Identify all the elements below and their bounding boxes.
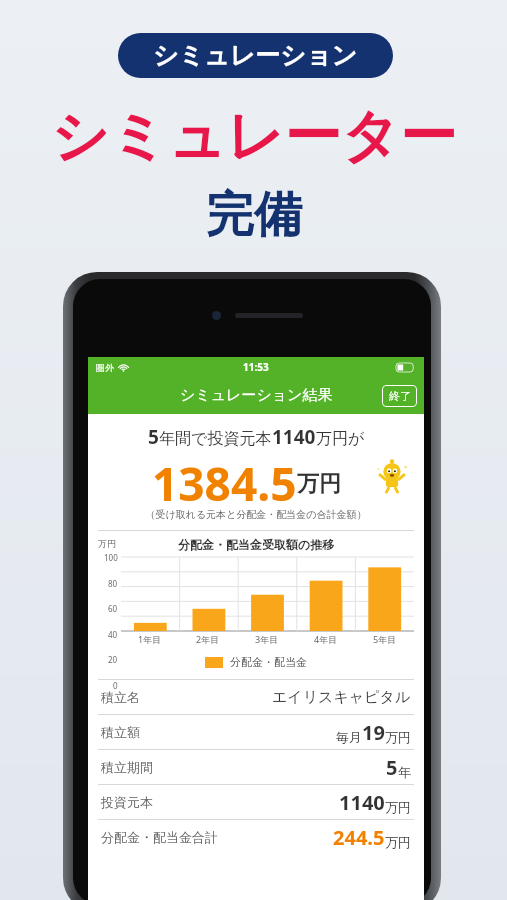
staticText: エイリスキャピタル: [272, 688, 411, 707]
staticText: 投資元本: [101, 794, 153, 810]
staticText: 積立額: [101, 724, 140, 740]
staticText: 1140: [339, 789, 385, 816]
staticText: シミュレーション: [153, 40, 358, 71]
staticText: 毎月: [336, 729, 362, 745]
staticText: （受け取れる元本と分配金・配当金の合計金額）: [145, 508, 367, 521]
staticText: 分配金・配当金受取額の推移: [178, 537, 335, 552]
staticText: 60: [108, 603, 118, 613]
staticText: シミュレーター: [51, 101, 457, 173]
staticText: 万円: [385, 834, 411, 850]
staticText: 万円が: [316, 429, 365, 449]
button[interactable]: 積立期間: [88, 750, 424, 785]
staticText: 5: [386, 754, 398, 781]
staticText: 100: [104, 552, 118, 562]
staticText: 4年目: [314, 633, 338, 645]
staticText: 万円: [297, 470, 341, 498]
button[interactable]: 積立額: [88, 715, 424, 750]
staticText: 80: [108, 578, 118, 588]
button[interactable]: 分配金・配当金合計: [88, 820, 424, 854]
staticText: 積立期間: [101, 759, 153, 775]
staticText: 積立名: [101, 689, 140, 705]
staticText: 11:53: [243, 360, 269, 374]
staticText: シミュレーション結果: [180, 386, 333, 405]
staticText: 年: [398, 764, 411, 780]
staticText: 20: [108, 654, 118, 664]
staticText: 1140: [272, 424, 316, 450]
button[interactable]: シミュレーション: [118, 33, 393, 78]
button[interactable]: 投資元本: [88, 785, 424, 820]
staticText: 完備: [206, 185, 302, 245]
other: マスコット: [374, 459, 410, 495]
staticText: 分配金・配当金合計: [101, 829, 218, 845]
staticText: 3年目: [255, 633, 279, 645]
staticText: 19: [362, 719, 385, 746]
staticText: 5年目: [373, 633, 397, 645]
staticText: 1年目: [138, 633, 162, 645]
button[interactable]: 積立名: [88, 680, 424, 715]
staticText: 1384.5: [152, 452, 297, 502]
staticText: 40: [108, 629, 118, 639]
staticText: 0: [113, 680, 118, 690]
staticText: 終了: [389, 389, 411, 403]
staticText: 万円: [385, 729, 411, 745]
staticText: 年間で投資元本: [159, 429, 272, 449]
staticText: 2年目: [196, 633, 220, 645]
staticText: 万円: [385, 799, 411, 815]
staticText: 分配金・配当金: [230, 655, 307, 669]
staticText: 圏外: [96, 362, 114, 373]
staticText: 244.5: [333, 824, 385, 851]
button[interactable]: 終了: [382, 385, 417, 407]
staticText: 5: [148, 424, 159, 450]
staticText: 万円: [98, 538, 116, 549]
